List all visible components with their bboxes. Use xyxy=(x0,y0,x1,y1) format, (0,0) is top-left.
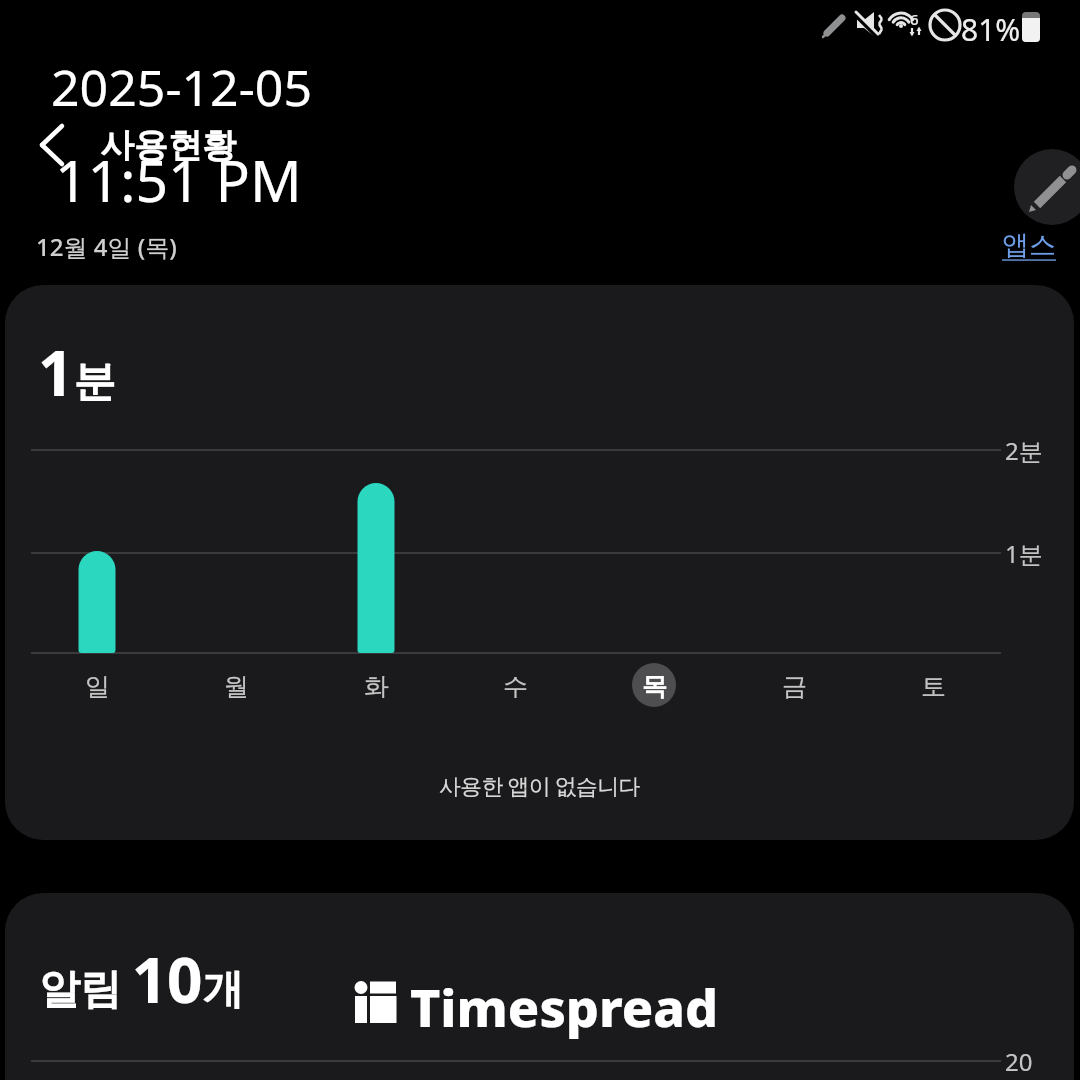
staticText: 12월 4일 (목) xyxy=(36,230,177,263)
staticText: 사용현황 xyxy=(100,124,236,167)
staticText: Timespread xyxy=(410,971,719,1042)
staticText: 1분 xyxy=(38,330,116,414)
button[interactable]: 알림 10개 xyxy=(5,893,1074,1080)
staticText: 6 xyxy=(910,9,919,29)
staticText: 월 xyxy=(224,671,249,702)
staticText: 81% xyxy=(961,9,1021,50)
staticText: 사용한 앱이 없습니다 xyxy=(439,770,640,800)
staticText: 알림 10개 xyxy=(39,937,244,1021)
staticText: 토 xyxy=(921,671,946,702)
staticText: 목 xyxy=(642,671,667,702)
staticText: 앱스 xyxy=(1002,228,1056,262)
button[interactable]: 앱스 xyxy=(1002,228,1056,262)
button[interactable] xyxy=(1014,149,1080,225)
staticText: 화 xyxy=(364,671,389,702)
staticText: 11:51 PM xyxy=(55,141,302,219)
staticText: 일 xyxy=(85,671,110,702)
staticText: 20 xyxy=(1005,1045,1033,1077)
staticText: 1분 xyxy=(1005,537,1043,569)
staticText: 금 xyxy=(782,671,807,702)
button[interactable]: 1분 xyxy=(5,285,1074,840)
staticText: 2025-12-05 xyxy=(51,53,312,121)
button[interactable] xyxy=(30,120,80,170)
staticText: 수 xyxy=(503,671,528,702)
staticText: 2분 xyxy=(1005,434,1043,466)
